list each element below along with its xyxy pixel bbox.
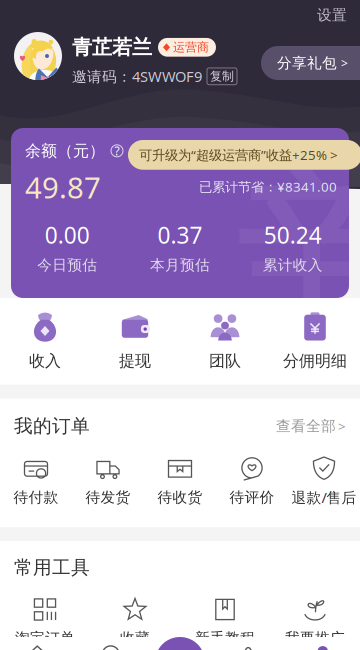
button[interactable]: 待付款 (0, 457, 72, 506)
button[interactable]: 购物车 (211, 639, 285, 650)
staticText: 50.24 (264, 220, 322, 250)
button[interactable]: 可升级为“超级运营商”收益+25% > (128, 140, 349, 170)
button[interactable]: 分类 (74, 639, 149, 650)
staticText: 0.00 (45, 220, 90, 250)
button[interactable]: 新手教程 (180, 598, 270, 647)
staticText: 退款/售后 (291, 488, 356, 507)
staticText: 待付款 (13, 488, 58, 506)
staticText: 本月预估 (150, 256, 210, 274)
button[interactable]: 待发货 (72, 457, 144, 506)
button[interactable]: 分享礼包 (261, 32, 360, 80)
staticText: 待发货 (85, 488, 130, 506)
staticText: 已累计节省：¥8341.00 (199, 178, 337, 195)
button[interactable]: 淘宝订单 (0, 598, 90, 647)
staticText: 待收货 (157, 488, 202, 506)
button[interactable]: 分佣明细 (270, 312, 360, 371)
button[interactable]: 团队 (180, 312, 270, 371)
staticText: 青芷若兰 (72, 35, 152, 60)
staticText: 可升级为“超级运营商”收益+25% > (139, 146, 338, 164)
button[interactable]: 收入 (0, 312, 90, 371)
button[interactable]: 我要推广 (270, 598, 360, 647)
staticText: 累计收入 (263, 256, 323, 274)
button[interactable]: 设置 (307, 0, 360, 30)
staticText: 新手教程 (195, 629, 255, 647)
button[interactable]: 首页 (0, 639, 74, 650)
staticText: 查看全部 (276, 417, 336, 435)
staticText: 淘宝订单 (15, 629, 75, 647)
button[interactable]: 退款/售后 (288, 457, 360, 507)
button[interactable]: 待收货 (144, 457, 216, 506)
staticText: 运营商 (173, 40, 209, 55)
staticText: ? (114, 143, 119, 159)
staticText: 0.37 (157, 220, 202, 250)
staticText: 余额（元） (25, 141, 105, 161)
staticText: 我要推广 (285, 629, 345, 647)
staticText: 49.87 (25, 168, 101, 207)
staticText: 团队 (209, 351, 241, 371)
button[interactable]: 收藏 (90, 598, 180, 647)
button[interactable]: 发布 (155, 637, 205, 650)
button[interactable]: 待评价 (216, 457, 288, 506)
staticText: 邀请码：4SWWOF9 (72, 67, 202, 86)
staticText: 复制 (210, 69, 234, 84)
button[interactable]: 查看全部 (276, 417, 346, 435)
staticText: 提现 (119, 351, 151, 371)
staticText: 辛 (237, 152, 360, 335)
staticText: 收藏 (120, 629, 150, 647)
staticText: > (341, 55, 348, 71)
staticText: 分享礼包 (277, 54, 337, 72)
staticText: 分佣明细 (283, 351, 347, 371)
staticText: 设置 (317, 6, 347, 24)
staticText: 我的订单 (14, 415, 90, 438)
button[interactable]: 提现 (90, 312, 180, 371)
staticText: 今日预估 (37, 256, 97, 274)
button[interactable]: 我的 (285, 639, 360, 650)
staticText: > (338, 417, 346, 435)
staticText: 常用工具 (14, 556, 90, 579)
button[interactable]: 复制 (207, 68, 237, 85)
staticText: 待评价 (229, 488, 274, 506)
staticText: 收入 (29, 351, 61, 371)
